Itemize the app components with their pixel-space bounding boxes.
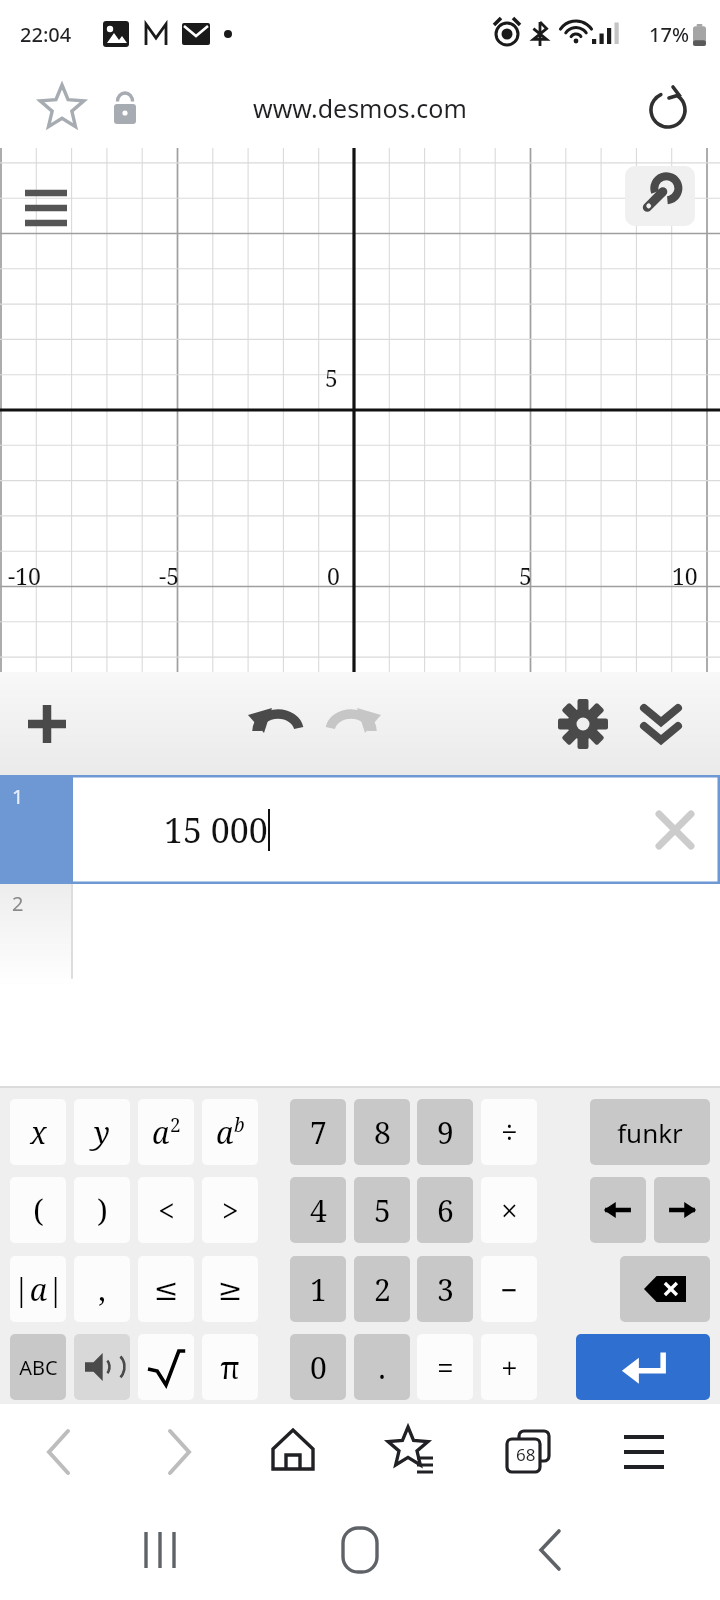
- staticText: (: [33, 1190, 44, 1231]
- button[interactable]: Back: [30, 1404, 88, 1500]
- button[interactable]: <: [138, 1177, 194, 1243]
- button[interactable]: ,: [74, 1256, 130, 1322]
- staticText: y: [94, 1112, 110, 1153]
- button[interactable]: Browser menu: [615, 1404, 673, 1500]
- button[interactable]: 4: [290, 1177, 346, 1243]
- button[interactable]: Menu: [14, 176, 78, 240]
- staticText: a: [216, 1112, 234, 1153]
- button[interactable]: Move left: [590, 1177, 646, 1243]
- button[interactable]: 6: [417, 1177, 473, 1243]
- staticText: 3: [437, 1269, 454, 1310]
- staticText: 2: [12, 890, 24, 917]
- button[interactable]: π: [202, 1334, 258, 1400]
- staticText: |a|: [13, 1269, 64, 1310]
- button[interactable]: Move right: [654, 1177, 710, 1243]
- staticText: 4: [310, 1190, 327, 1231]
- staticText: -5: [159, 560, 179, 591]
- button[interactable]: 8: [354, 1099, 410, 1165]
- staticText: 10: [672, 560, 698, 591]
- staticText: ≤: [153, 1272, 179, 1307]
- button[interactable]: −: [481, 1256, 537, 1322]
- staticText: 1: [310, 1269, 327, 1310]
- staticText: π: [220, 1347, 240, 1388]
- button[interactable]: ×: [481, 1177, 537, 1243]
- button[interactable]: (: [10, 1177, 66, 1243]
- button[interactable]: ABC: [10, 1334, 66, 1400]
- button[interactable]: Tabs: [499, 1404, 557, 1500]
- button[interactable]: 2: [354, 1256, 410, 1322]
- button[interactable]: Home: [320, 1500, 400, 1600]
- button[interactable]: Settings: [550, 691, 616, 757]
- staticText: 6: [437, 1190, 454, 1231]
- button[interactable]: 15 000: [73, 775, 720, 884]
- button[interactable]: Bookmark page: [34, 80, 90, 136]
- button[interactable]: Audio trace: [74, 1334, 130, 1400]
- button[interactable]: Forward: [150, 1404, 208, 1500]
- staticText: 0: [310, 1347, 327, 1388]
- staticText: 5: [325, 362, 338, 393]
- button[interactable]: y: [74, 1099, 130, 1165]
- staticText: 68: [516, 1443, 536, 1466]
- staticText: 17%: [649, 21, 689, 48]
- button[interactable]: x: [10, 1099, 66, 1165]
- button[interactable]: Redo: [318, 691, 384, 757]
- button[interactable]: Backspace: [620, 1256, 710, 1322]
- staticText: 2: [374, 1269, 391, 1310]
- button[interactable]: Reload: [640, 80, 696, 136]
- button[interactable]: Enter: [576, 1334, 710, 1400]
- button[interactable]: Back: [510, 1500, 590, 1600]
- button[interactable]: 1: [0, 775, 73, 884]
- staticText: ×: [501, 1190, 518, 1231]
- button[interactable]: ≥: [202, 1256, 258, 1322]
- staticText: 1: [12, 783, 24, 810]
- staticText: 2: [170, 1112, 181, 1138]
- button[interactable]: Graph settings: [625, 166, 695, 226]
- staticText: -10: [8, 560, 41, 591]
- button[interactable]: 7: [290, 1099, 346, 1165]
- staticText: 5: [374, 1190, 391, 1231]
- button[interactable]: Add expression: [14, 691, 80, 757]
- button[interactable]: =: [417, 1334, 473, 1400]
- button[interactable]: ≤: [138, 1256, 194, 1322]
- staticText: 7: [310, 1112, 327, 1153]
- staticText: >: [222, 1190, 239, 1231]
- button[interactable]: >: [202, 1177, 258, 1243]
- staticText: +: [501, 1347, 518, 1388]
- button[interactable]: 0: [290, 1334, 346, 1400]
- button[interactable]: a: [202, 1099, 258, 1165]
- button[interactable]: ÷: [481, 1099, 537, 1165]
- staticText: =: [437, 1347, 454, 1388]
- button[interactable]: [138, 1334, 194, 1400]
- button[interactable]: |a|: [10, 1256, 66, 1322]
- button[interactable]: Recent apps: [120, 1500, 200, 1600]
- staticText: <: [158, 1190, 175, 1231]
- button[interactable]: ): [74, 1177, 130, 1243]
- button[interactable]: Delete expression: [648, 803, 702, 857]
- staticText: a: [152, 1112, 170, 1153]
- staticText: 15 000: [164, 807, 268, 853]
- button[interactable]: a: [138, 1099, 194, 1165]
- button[interactable]: +: [481, 1334, 537, 1400]
- button[interactable]: funkr: [590, 1099, 710, 1165]
- staticText: ≥: [217, 1272, 243, 1307]
- button[interactable]: 9: [417, 1099, 473, 1165]
- staticText: 5: [519, 560, 532, 591]
- staticText: 0: [327, 560, 340, 591]
- button[interactable]: .: [354, 1334, 410, 1400]
- button[interactable]: 5: [354, 1177, 410, 1243]
- button[interactable]: Bookmarks: [383, 1404, 441, 1500]
- staticText: ÷: [501, 1112, 518, 1153]
- button[interactable]: Site security: [100, 83, 150, 133]
- staticText: .: [378, 1347, 386, 1388]
- button[interactable]: 2: [0, 884, 73, 987]
- button[interactable]: Collapse keypad: [628, 691, 694, 757]
- button[interactable]: Home: [264, 1404, 322, 1500]
- staticText: 9: [437, 1112, 454, 1153]
- staticText: 8: [374, 1112, 391, 1153]
- button[interactable]: 1: [290, 1256, 346, 1322]
- staticText: ,: [98, 1269, 106, 1310]
- button[interactable]: 3: [417, 1256, 473, 1322]
- button[interactable]: Undo: [245, 691, 311, 757]
- staticText: ABC: [19, 1354, 58, 1381]
